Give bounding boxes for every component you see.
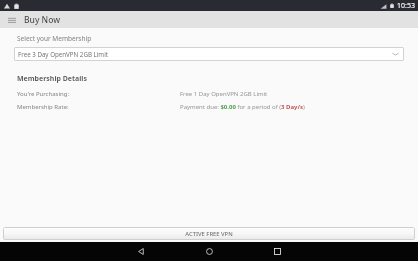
button[interactable]: Free 3 Day OpenVPN 2GB Limit — [14, 47, 404, 61]
staticText: Membership Details — [17, 74, 87, 84]
button[interactable]: Open navigation menu — [0, 11, 24, 28]
staticText: Free 3 Day OpenVPN 2GB Limit — [18, 50, 108, 58]
button[interactable]: Home — [186, 242, 232, 261]
staticText: Free 1 Day OpenVPN 2GB Limit — [180, 90, 268, 98]
button[interactable]: Back — [118, 242, 164, 261]
staticText: Membership Rate: — [17, 103, 180, 111]
staticText: You're Purchasing: — [17, 90, 180, 98]
staticText: ACTIVE FREE VPN — [185, 230, 233, 238]
staticText: 10:53 — [397, 1, 415, 11]
button[interactable]: ACTIVE FREE VPN — [3, 227, 415, 240]
staticText: Buy Now — [24, 14, 61, 26]
button[interactable]: Recent apps — [254, 242, 300, 261]
staticText: Payment due: $0.00 for a period of (3 Da… — [180, 103, 305, 111]
staticText: Select your Membership — [17, 34, 92, 43]
